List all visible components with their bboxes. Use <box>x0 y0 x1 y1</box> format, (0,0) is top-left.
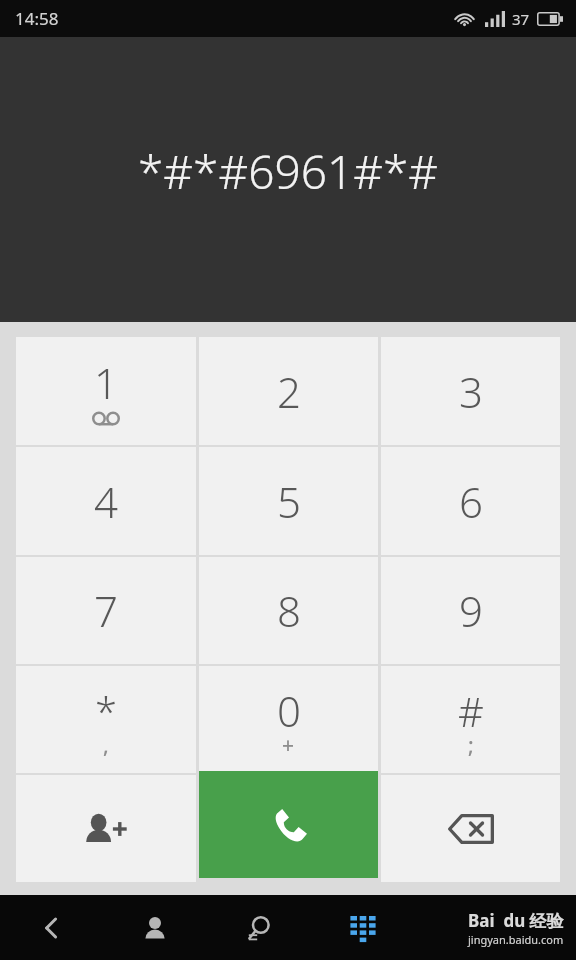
button[interactable]: 5 <box>199 447 378 555</box>
button[interactable]: Backspace <box>381 775 560 882</box>
staticText: 5 <box>277 473 301 530</box>
button[interactable]: Dialpad <box>311 895 415 960</box>
staticText: # <box>458 684 484 738</box>
staticText: 2 <box>277 363 301 420</box>
button[interactable]: 1 <box>16 337 196 445</box>
button[interactable]: 6 <box>381 447 560 555</box>
button[interactable]: 3 <box>381 337 560 445</box>
staticText: Bai du 经验 <box>468 909 564 932</box>
button[interactable]: Back <box>0 895 103 960</box>
staticText: 0 <box>277 682 301 739</box>
button[interactable]: Contacts <box>103 895 207 960</box>
staticText: 3 <box>459 363 483 420</box>
button[interactable]: Search <box>207 895 311 960</box>
button[interactable]: Call <box>199 771 378 878</box>
button[interactable]: 2 <box>199 337 378 445</box>
button[interactable]: 7 <box>16 557 196 664</box>
staticText: *#*#6961#*# <box>12 140 564 203</box>
staticText: + <box>282 731 295 760</box>
button[interactable]: Add contact <box>16 775 196 882</box>
staticText: 8 <box>277 582 301 639</box>
button[interactable]: # <box>381 666 560 773</box>
staticText: jingyan.baidu.com <box>468 932 564 947</box>
staticText: 14:58 <box>15 7 59 30</box>
staticText: 9 <box>459 582 483 639</box>
staticText: ; <box>468 731 474 760</box>
staticText: 37 <box>512 9 530 29</box>
staticText: , <box>103 731 109 760</box>
staticText: 1 <box>94 354 118 411</box>
button[interactable]: 0 <box>199 666 378 773</box>
button[interactable]: * <box>16 666 196 773</box>
button[interactable]: 9 <box>381 557 560 664</box>
staticText: * <box>95 684 118 738</box>
staticText: 6 <box>459 473 483 530</box>
button[interactable]: 4 <box>16 447 196 555</box>
staticText: 7 <box>94 582 118 639</box>
button[interactable]: 8 <box>199 557 378 664</box>
staticText: 4 <box>94 473 118 530</box>
